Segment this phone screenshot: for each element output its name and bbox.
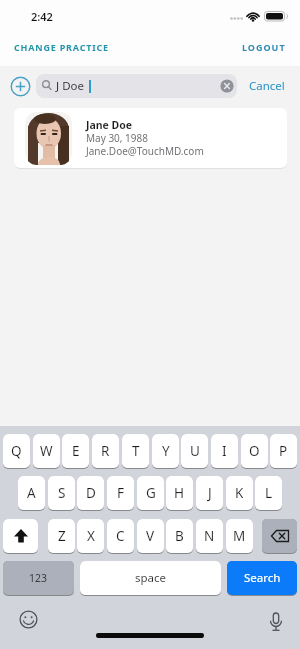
staticText: Z — [58, 527, 66, 545]
staticText: W — [40, 442, 53, 460]
staticText: C — [116, 527, 125, 545]
staticText: A — [27, 484, 36, 502]
button[interactable]: E — [62, 434, 89, 468]
button[interactable]: N — [196, 519, 223, 553]
button[interactable]: J Doe — [36, 74, 237, 98]
button[interactable]: M — [226, 519, 253, 553]
button[interactable] — [262, 519, 297, 553]
staticText: S — [58, 484, 66, 502]
staticText: K — [235, 484, 244, 502]
staticText: G — [146, 484, 156, 502]
staticText: CHANGE PRACTICE — [14, 41, 109, 53]
staticText: H — [174, 484, 185, 502]
staticText: LOGOUT — [242, 41, 286, 53]
button[interactable] — [264, 609, 288, 637]
button[interactable]: S — [48, 476, 75, 510]
staticText: space — [135, 570, 167, 586]
staticText: D — [86, 484, 96, 502]
button[interactable]: A — [18, 476, 45, 510]
staticText: 123 — [29, 571, 48, 585]
staticText: X — [87, 527, 95, 545]
staticText: O — [249, 442, 260, 460]
staticText: Jane.Doe@TouchMD.com — [86, 144, 204, 158]
staticText: M — [233, 527, 246, 545]
staticText: Y — [162, 442, 170, 460]
button[interactable]: Z — [48, 519, 75, 553]
button[interactable]: C — [107, 519, 134, 553]
button[interactable]: R — [92, 434, 119, 468]
button[interactable]: Search — [227, 561, 297, 595]
button[interactable]: D — [77, 476, 104, 510]
button[interactable]: K — [226, 476, 253, 510]
staticText: E — [72, 442, 80, 460]
staticText: B — [175, 527, 184, 545]
button[interactable]: V — [137, 519, 164, 553]
button[interactable]: F — [107, 476, 134, 510]
staticText: U — [190, 442, 200, 460]
button[interactable]: L — [255, 476, 282, 510]
button[interactable]: Jane Doe — [14, 108, 287, 168]
staticText: 2:42 — [31, 9, 53, 24]
button[interactable]: 123 — [3, 561, 74, 595]
button[interactable]: LOGOUT — [230, 39, 286, 54]
button[interactable]: CHANGE PRACTICE — [14, 39, 109, 54]
staticText: T — [132, 442, 140, 460]
staticText: May 30, 1988 — [86, 131, 148, 145]
button[interactable]: Cancel — [245, 74, 289, 98]
button[interactable]: O — [241, 434, 268, 468]
button[interactable]: W — [33, 434, 60, 468]
staticText: R — [101, 442, 110, 460]
staticText: P — [279, 442, 288, 460]
button[interactable]: U — [181, 434, 208, 468]
staticText: F — [117, 484, 125, 502]
button[interactable]: Y — [152, 434, 179, 468]
button[interactable]: Q — [3, 434, 30, 468]
button[interactable]: I — [211, 434, 238, 468]
button[interactable]: T — [122, 434, 149, 468]
staticText: N — [204, 527, 215, 545]
staticText: Cancel — [249, 78, 285, 94]
staticText: J — [208, 484, 212, 502]
button[interactable]: J — [196, 476, 223, 510]
button[interactable]: P — [270, 434, 297, 468]
staticText: Q — [11, 442, 22, 460]
button[interactable] — [10, 76, 31, 97]
button[interactable]: G — [137, 476, 164, 510]
button[interactable]: H — [166, 476, 193, 510]
button[interactable] — [18, 609, 39, 630]
staticText: Jane Doe — [86, 118, 133, 132]
button[interactable]: space — [80, 561, 221, 595]
staticText: Search — [244, 570, 281, 586]
button[interactable]: B — [166, 519, 193, 553]
staticText: L — [265, 484, 273, 502]
staticText: I — [222, 442, 227, 460]
button[interactable]: X — [77, 519, 104, 553]
staticText: V — [146, 527, 155, 545]
staticText: J Doe — [56, 78, 84, 94]
button[interactable] — [3, 519, 38, 553]
